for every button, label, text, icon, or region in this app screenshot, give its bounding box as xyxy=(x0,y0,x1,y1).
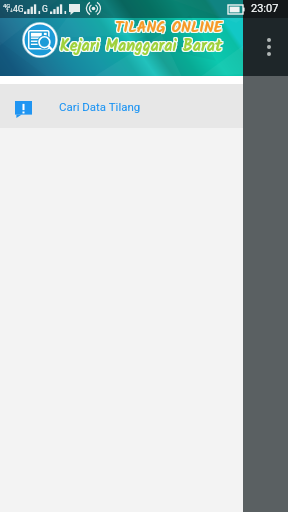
staticText: Kejari Manggarai Barat xyxy=(61,33,224,59)
staticText: Kejari Manggarai Barat xyxy=(59,35,222,61)
button[interactable]: Cari Data Tilang xyxy=(0,84,288,128)
staticText: Kejari Manggarai Barat xyxy=(61,34,224,60)
staticText: Kejari Manggarai Barat xyxy=(60,34,223,60)
staticText: TILANG ONLINE xyxy=(114,15,222,40)
staticText: TILANG ONLINE xyxy=(116,15,224,40)
staticText: 23:07 xyxy=(251,2,279,15)
staticText: Kejari Manggarai Barat xyxy=(61,35,224,61)
staticText: G xyxy=(42,4,48,14)
staticText: TILANG ONLINE xyxy=(115,16,223,41)
staticText: TILANG ONLINE xyxy=(115,15,223,40)
staticText: TILANG ONLINE xyxy=(114,17,222,42)
staticText: TILANG ONLINE xyxy=(116,16,224,41)
staticText: Kejari Manggarai Barat xyxy=(59,34,222,60)
staticText: Kejari Manggarai Barat xyxy=(60,35,223,61)
staticText: TILANG ONLINE xyxy=(116,17,224,42)
staticText: Kejari Manggarai Barat xyxy=(60,33,223,59)
staticText: ↑↓ xyxy=(5,7,14,13)
button[interactable]: More options xyxy=(267,38,271,56)
staticText: 4G xyxy=(13,4,24,14)
staticText: TILANG ONLINE xyxy=(114,16,222,41)
staticText: TILANG ONLINE xyxy=(115,17,223,42)
staticText: 4G xyxy=(3,2,11,9)
staticText: Cari Data Tilang xyxy=(59,100,141,113)
staticText: Kejari Manggarai Barat xyxy=(59,33,222,59)
